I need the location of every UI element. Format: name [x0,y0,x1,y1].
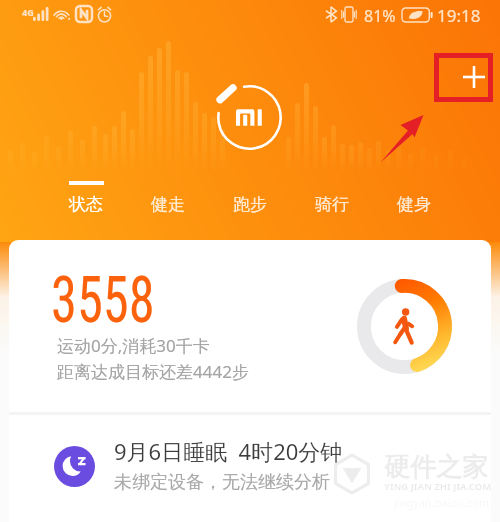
staticText: 4G [22,6,34,18]
button[interactable]: Add device [450,52,498,101]
staticText: 未绑定设备，无法继续分析 [114,471,330,494]
staticText: 骑行 [315,194,349,215]
button[interactable]: 跑步 [209,176,291,220]
button[interactable]: 骑行 [291,176,373,220]
staticText: 硬件之家 [384,451,488,484]
staticText: 跑步 [233,194,267,215]
button[interactable]: 硬件之家 [9,415,491,522]
staticText: 19:18 [437,4,481,27]
staticText: 3558 [51,263,155,338]
button[interactable]: 健走 [127,176,209,220]
staticText: 运动0分,消耗30千卡 [57,334,210,357]
button[interactable]: 3558 [9,240,491,414]
staticText: 81% [364,5,396,27]
staticText: 健走 [151,194,185,215]
staticText: 9月6日睡眠 4时20分钟 [114,436,343,466]
button[interactable]: 健身 [373,176,455,220]
staticText: 状态 [69,194,103,215]
staticText: 距离达成目标还差4442步 [57,360,249,383]
staticText: YING JIAN ZHI JIA.COM [384,480,492,493]
staticText: 健身 [397,194,431,215]
button[interactable]: 状态 [45,176,127,220]
